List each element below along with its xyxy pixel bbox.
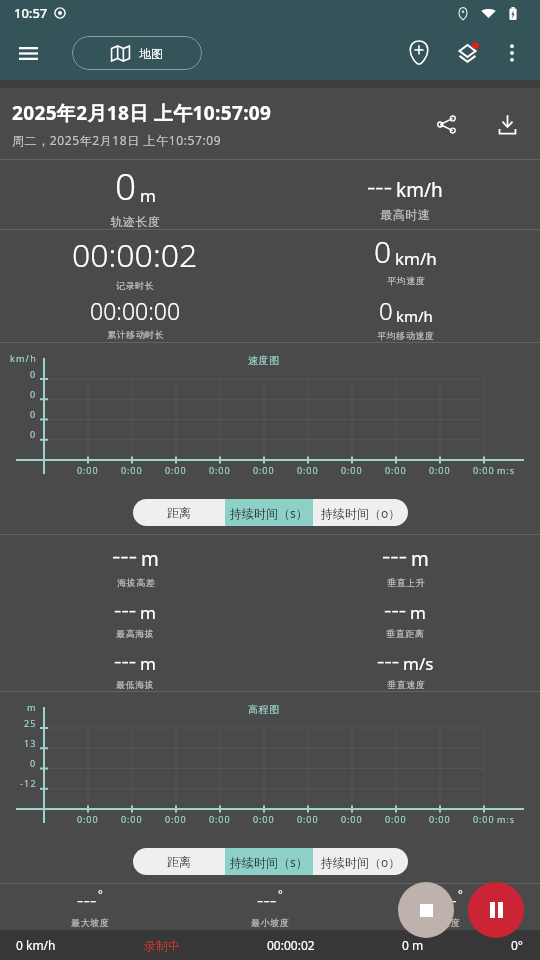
staticText: ° <box>458 886 463 901</box>
staticText: 00:00:02 <box>267 937 315 953</box>
button[interactable]: Download <box>479 96 535 152</box>
button[interactable]: 持续时间（s） <box>225 499 313 526</box>
button[interactable]: Layers <box>444 30 490 76</box>
staticText: 0 <box>30 368 37 380</box>
staticText: 0:00 <box>473 464 495 476</box>
staticText: 00:00:02 <box>72 233 198 277</box>
staticText: 0 <box>30 757 37 769</box>
staticText: 0:00 <box>77 464 99 476</box>
staticText: 0 <box>30 388 37 400</box>
staticText: km/h <box>10 352 37 364</box>
staticText: 0 <box>374 231 392 272</box>
staticText: 0:00 <box>429 464 451 476</box>
staticText: --- <box>382 537 408 572</box>
staticText: 0 <box>115 160 137 210</box>
staticText: --- <box>437 886 457 913</box>
staticText: m <box>140 184 156 207</box>
staticText: 0 km/h <box>16 937 56 953</box>
staticText: m <box>140 652 156 675</box>
staticText: 最大坡度 <box>71 917 109 928</box>
staticText: 轨迹长度 <box>110 214 160 229</box>
staticText: 录制中 <box>144 938 180 953</box>
button[interactable]: Add marker <box>396 30 442 76</box>
staticText: 持续时间（o） <box>321 505 401 521</box>
staticText: --- <box>377 644 400 675</box>
staticText: 0:00 <box>165 813 187 825</box>
staticText: m:s <box>497 813 515 825</box>
button[interactable]: 地图 <box>72 36 202 70</box>
button[interactable]: More options <box>492 33 532 73</box>
staticText: 0:00 <box>297 813 319 825</box>
staticText: 最高海拔 <box>116 628 154 639</box>
staticText: 最低海拔 <box>116 679 154 690</box>
staticText: m <box>27 701 37 713</box>
staticText: 持续时间（s） <box>230 854 308 870</box>
staticText: 13 <box>24 737 37 749</box>
button[interactable]: Pause <box>468 882 524 938</box>
staticText: km/h <box>396 306 433 326</box>
button[interactable]: 持续时间（o） <box>313 848 408 875</box>
staticText: m/s <box>403 652 434 675</box>
staticText: 0:00 <box>121 464 143 476</box>
staticText: 垂直上升 <box>387 577 425 588</box>
staticText: 周二，2025年2月18日 上午10:57:09 <box>12 132 222 148</box>
button[interactable]: 距离 <box>133 848 225 875</box>
staticText: m <box>410 601 426 624</box>
staticText: m <box>140 601 156 624</box>
staticText: --- <box>112 537 138 572</box>
staticText: ° <box>278 886 283 901</box>
staticText: km/h <box>395 247 437 270</box>
staticText: 累计移动时长 <box>107 329 164 340</box>
staticText: 0 <box>30 428 37 440</box>
staticText: 地图 <box>139 46 163 61</box>
staticText: 坡度 <box>441 917 460 928</box>
staticText: 海拔高差 <box>117 577 155 588</box>
staticText: 记录时长 <box>116 280 154 291</box>
staticText: 持续时间（s） <box>230 505 308 521</box>
staticText: 0:00 <box>121 813 143 825</box>
staticText: 0:00 <box>473 813 495 825</box>
staticText: 0:00 <box>297 464 319 476</box>
staticText: 0° <box>511 937 524 953</box>
staticText: --- <box>114 593 137 624</box>
button[interactable]: 持续时间（s） <box>225 848 313 875</box>
staticText: 0:00 <box>385 813 407 825</box>
staticText: 0:00 <box>385 464 407 476</box>
button[interactable]: Menu <box>6 31 50 75</box>
staticText: --- <box>367 168 393 203</box>
button[interactable]: Share <box>420 98 472 150</box>
staticText: m <box>141 546 159 572</box>
staticText: 2025年2月18日 上午10:57:09 <box>12 100 272 126</box>
staticText: km/h <box>396 177 443 203</box>
staticText: 0:00 <box>341 464 363 476</box>
staticText: 最小坡度 <box>251 917 289 928</box>
staticText: 0:00 <box>209 813 231 825</box>
staticText: 0:00 <box>253 813 275 825</box>
staticText: 10:57 <box>14 4 48 22</box>
staticText: 0 m <box>402 937 424 953</box>
staticText: 平均移动速度 <box>377 330 434 341</box>
staticText: 00:00:00 <box>90 295 181 326</box>
staticText: 0:00 <box>429 813 451 825</box>
button[interactable]: 距离 <box>133 499 225 526</box>
staticText: 0:00 <box>209 464 231 476</box>
staticText: 平均速度 <box>387 275 425 286</box>
staticText: -12 <box>20 777 37 789</box>
staticText: ° <box>98 886 103 901</box>
staticText: 最高时速 <box>380 207 430 222</box>
staticText: --- <box>257 886 277 913</box>
staticText: 高程图 <box>248 703 280 716</box>
staticText: 0 <box>30 408 37 420</box>
button[interactable]: 持续时间（o） <box>313 499 408 526</box>
staticText: 25 <box>24 717 37 729</box>
staticText: 垂直距离 <box>386 628 424 639</box>
staticText: 0:00 <box>341 813 363 825</box>
staticText: 垂直速度 <box>387 679 425 690</box>
staticText: --- <box>384 593 407 624</box>
staticText: --- <box>77 886 97 913</box>
button[interactable]: Stop <box>398 882 454 938</box>
staticText: 距离 <box>167 854 191 869</box>
staticText: m <box>411 546 429 572</box>
staticText: 距离 <box>167 505 191 520</box>
staticText: 0:00 <box>165 464 187 476</box>
